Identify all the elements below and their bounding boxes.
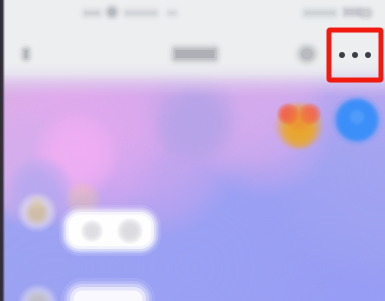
button[interactable]: Search [287, 32, 327, 76]
button[interactable]: Back [4, 32, 48, 76]
button[interactable]: More options [329, 30, 381, 80]
